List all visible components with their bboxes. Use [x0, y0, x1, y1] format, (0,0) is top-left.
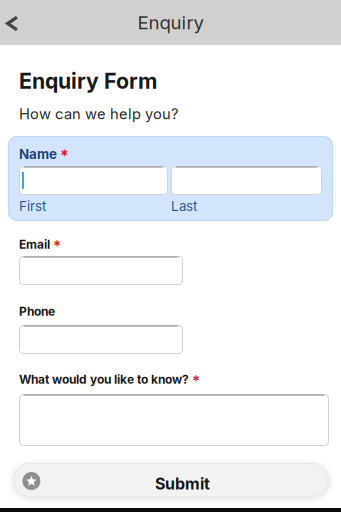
staticText: Submit	[155, 474, 210, 493]
staticText: How can we help you?	[19, 105, 178, 123]
staticText: Last	[171, 198, 197, 214]
staticText: Email	[19, 237, 50, 251]
staticText: First	[19, 198, 46, 214]
staticText: *	[60, 146, 69, 165]
staticText: *	[192, 372, 200, 390]
staticText: What would you like to know?	[19, 372, 189, 386]
button[interactable]: Back	[0, 0, 30, 45]
staticText: *	[53, 237, 61, 255]
staticText: Name	[19, 146, 57, 162]
staticText: Enquiry	[137, 11, 203, 34]
button[interactable]: Submit	[13, 463, 329, 497]
staticText: Enquiry Form	[19, 68, 157, 94]
staticText: Phone	[19, 304, 55, 318]
